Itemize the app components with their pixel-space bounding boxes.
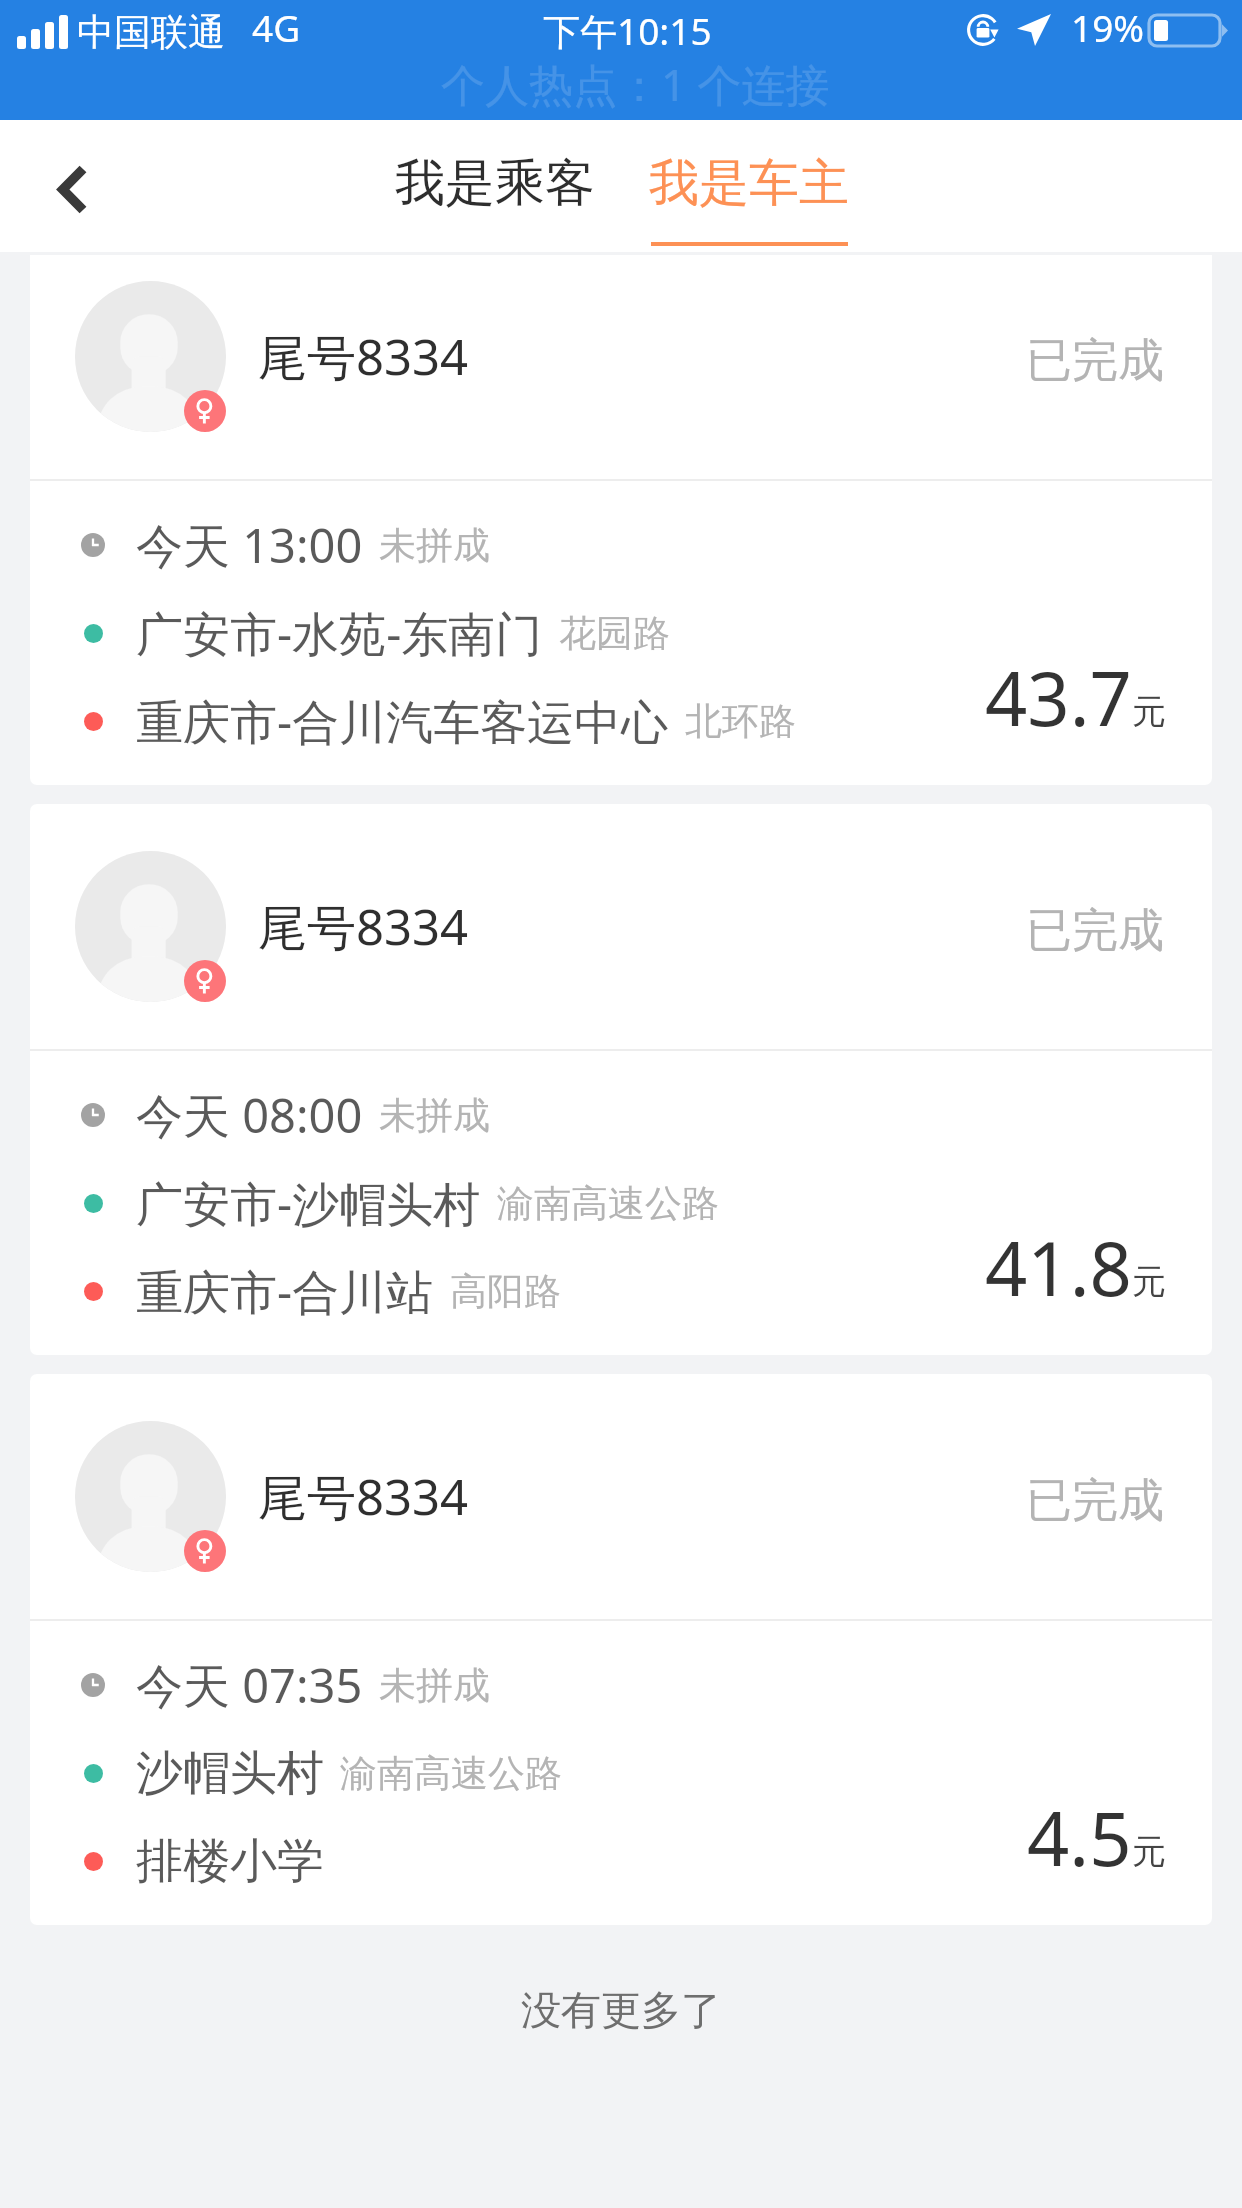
staticText: 我是乘客 xyxy=(395,152,595,215)
staticText: 我是车主 xyxy=(649,152,849,215)
staticText: 尾号8334 xyxy=(258,1463,469,1530)
staticText: 北环路 xyxy=(685,698,796,745)
staticText: 43.7 xyxy=(985,647,1132,748)
button[interactable]: 尾号8334 xyxy=(30,255,1212,785)
staticText: 重庆市-合川站 xyxy=(136,1259,434,1323)
button[interactable]: 尾号8334 xyxy=(30,804,1212,1355)
staticText: 未拼成 xyxy=(379,522,490,569)
staticText: 渝南高速公路 xyxy=(340,1750,562,1797)
staticText: 下午10:15 xyxy=(543,5,712,56)
staticText: 广安市-沙帽头村 xyxy=(136,1171,481,1235)
staticText: 中国联通 xyxy=(77,9,225,56)
button[interactable]: 我是车主 xyxy=(622,120,876,252)
staticText: 渝南高速公路 xyxy=(497,1180,719,1227)
staticText: 未拼成 xyxy=(379,1662,490,1709)
staticText: 排楼小学 xyxy=(136,1832,324,1891)
staticText: 已完成 xyxy=(1026,902,1164,960)
staticText: 元 xyxy=(1132,690,1166,733)
staticText: 41.8 xyxy=(985,1217,1132,1318)
staticText: 已完成 xyxy=(1026,332,1164,390)
staticText: 元 xyxy=(1132,1830,1166,1873)
staticText: 未拼成 xyxy=(379,1092,490,1139)
staticText: 4G xyxy=(252,2,301,52)
staticText: 重庆市-合川汽车客运中心 xyxy=(136,689,669,753)
button[interactable]: 我是乘客 xyxy=(368,120,622,252)
staticText: 今天 13:00 xyxy=(136,513,363,577)
staticText: 4.5 xyxy=(1027,1787,1132,1888)
staticText: 高阳路 xyxy=(450,1268,561,1315)
staticText: 沙帽头村 xyxy=(136,1744,324,1803)
staticText: 个人热点：1 个连接 xyxy=(441,54,830,114)
staticText: 今天 08:00 xyxy=(136,1083,363,1147)
staticText: 花园路 xyxy=(559,610,670,657)
button[interactable]: 尾号8334 xyxy=(30,1374,1212,1925)
staticText: 今天 07:35 xyxy=(136,1653,363,1717)
staticText: 没有更多了 xyxy=(521,1985,721,2035)
button[interactable]: Back xyxy=(17,127,127,252)
staticText: 已完成 xyxy=(1026,1472,1164,1530)
staticText: 尾号8334 xyxy=(258,893,469,960)
staticText: 广安市-水苑-东南门 xyxy=(136,601,543,665)
staticText: 19% xyxy=(1071,2,1145,52)
staticText: 元 xyxy=(1132,1260,1166,1303)
staticText: 尾号8334 xyxy=(258,323,469,390)
